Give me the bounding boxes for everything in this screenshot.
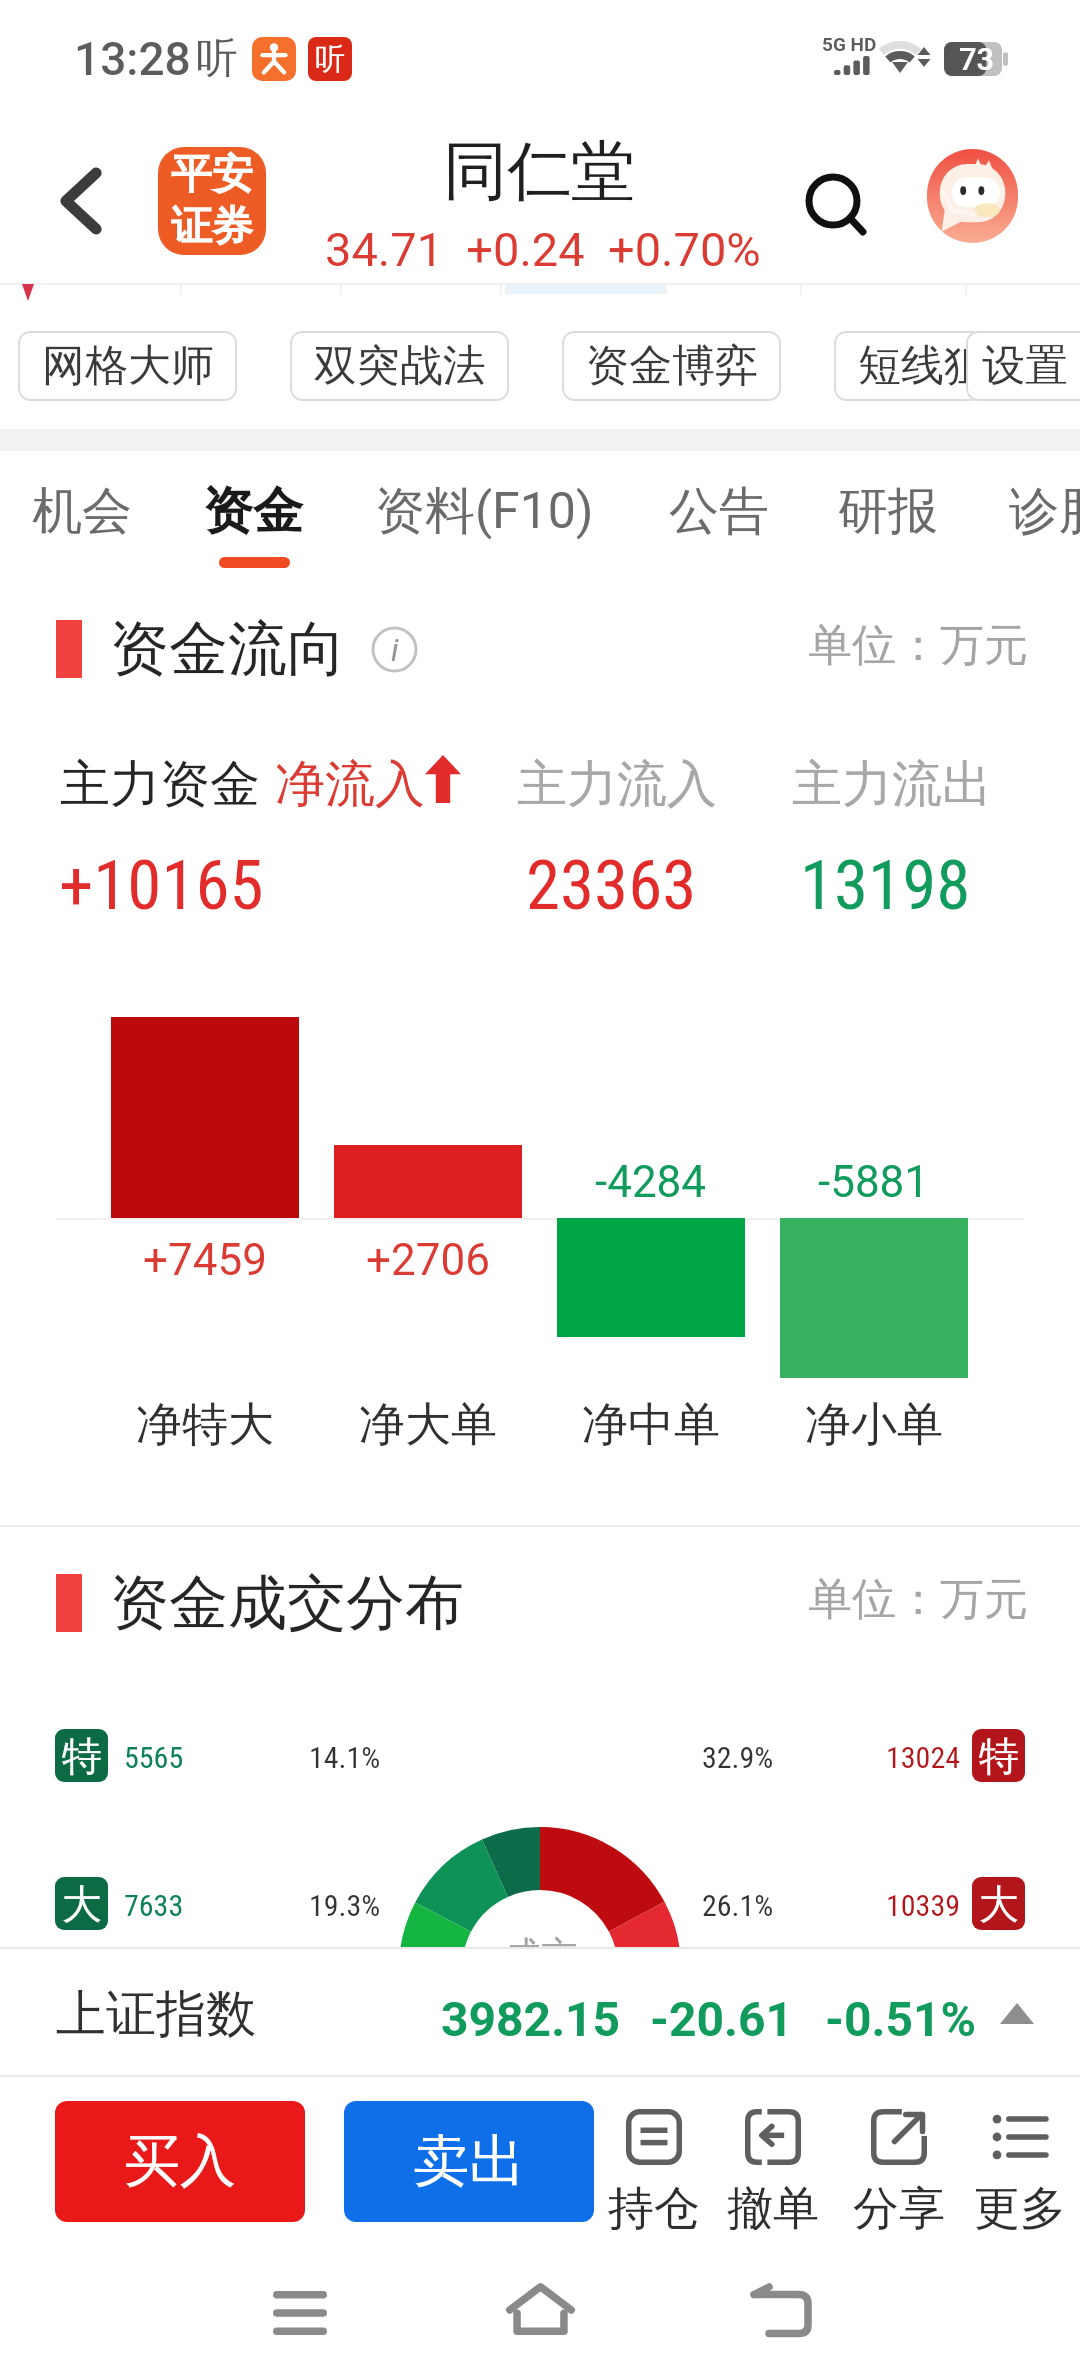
staticText: 买入	[124, 2126, 236, 2197]
staticText: -0.51%	[825, 1991, 976, 2047]
button[interactable]: 公告	[651, 455, 787, 580]
staticText: 7633	[124, 1888, 184, 1923]
button[interactable]: 上证指数	[0, 1947, 1080, 2077]
staticText: 资金	[203, 480, 303, 543]
staticText: 大	[62, 1879, 102, 1929]
staticText: 13198	[800, 845, 971, 926]
button[interactable]: Recents	[240, 2250, 360, 2376]
button[interactable]: Home	[480, 2250, 600, 2376]
staticText: 诊股	[1009, 480, 1080, 543]
staticText: i	[391, 631, 399, 669]
staticText: 单位：万元	[808, 618, 1028, 673]
button[interactable]: 研报	[820, 455, 956, 580]
button[interactable]: 卖出	[344, 2101, 594, 2222]
staticText: 单位：万元	[808, 1572, 1028, 1627]
staticText: 双突战法	[314, 339, 486, 393]
staticText: 净中单	[582, 1396, 720, 1454]
button[interactable]: 诊股	[991, 455, 1080, 580]
staticText: 32.9%	[702, 1740, 774, 1775]
staticText: 同仁堂	[443, 131, 635, 212]
staticText: +2706	[366, 1234, 490, 1286]
button[interactable]: Customer service	[927, 149, 1018, 243]
staticText: 特	[979, 1731, 1019, 1781]
button[interactable]: 分享	[839, 2098, 959, 2230]
staticText: 净大单	[359, 1396, 497, 1454]
staticText: 主力资金	[60, 753, 260, 816]
button[interactable]: Back	[720, 2250, 840, 2376]
staticText: 研报	[838, 480, 938, 543]
staticText: 更多	[974, 2180, 1066, 2230]
button[interactable]: 短线狙击	[834, 331, 1053, 401]
staticText: 持仓	[608, 2180, 700, 2230]
staticText: 证券	[171, 201, 253, 253]
button[interactable]: 资金博弈	[562, 331, 781, 401]
staticText: 平安	[171, 149, 253, 201]
staticText: 特	[62, 1731, 102, 1781]
staticText: -20.61	[650, 1991, 793, 2047]
staticText: 5G HD	[822, 33, 877, 55]
staticText: 34.71 +0.24 +0.70%	[325, 222, 761, 277]
staticText: 14.1%	[309, 1740, 381, 1775]
button[interactable]: Back	[41, 161, 121, 241]
staticText: 听	[196, 32, 238, 85]
staticText: 3982.15	[441, 1991, 621, 2047]
staticText: 资金流向	[110, 612, 346, 686]
button[interactable]: 资金	[185, 455, 321, 580]
button[interactable]: 买入	[55, 2101, 305, 2222]
button[interactable]: 更多	[960, 2098, 1080, 2230]
button[interactable]: Search	[788, 156, 880, 248]
staticText: 分享	[853, 2180, 945, 2230]
staticText: 短线狙击	[858, 339, 1030, 393]
button[interactable]: 撤单	[713, 2098, 833, 2230]
staticText: 资金成交分布	[110, 1566, 464, 1640]
staticText: 净特大	[136, 1396, 274, 1454]
staticText: 10339	[886, 1888, 961, 1923]
staticText: 上证指数	[56, 1983, 256, 2046]
button[interactable]: Info	[371, 626, 418, 673]
staticText: 主力流入	[517, 753, 717, 816]
staticText: 19.3%	[309, 1888, 381, 1923]
staticText: 公告	[669, 480, 769, 543]
staticText: 撤单	[727, 2180, 819, 2230]
staticText: 13024	[886, 1740, 961, 1775]
staticText: 机会	[32, 480, 132, 543]
button[interactable]: 设置	[966, 331, 1080, 401]
button[interactable]: 双突战法	[290, 331, 509, 401]
staticText: 资金博弈	[586, 339, 758, 393]
button[interactable]: 持仓	[594, 2098, 714, 2230]
staticText: -4284	[595, 1156, 707, 1208]
staticText: -5881	[818, 1156, 930, 1208]
staticText: 13:28	[74, 32, 191, 86]
staticText: +7459	[143, 1234, 267, 1286]
staticText: 23363	[526, 845, 697, 926]
staticText: +10165	[59, 845, 264, 926]
staticText: 资料(F10)	[375, 480, 594, 543]
staticText: 卖出	[413, 2126, 525, 2197]
staticText: 26.1%	[702, 1888, 774, 1923]
staticText: 听	[315, 40, 345, 78]
button[interactable]: Ping An Securities	[158, 147, 266, 255]
staticText: 73	[959, 41, 995, 75]
staticText: 净流入	[275, 753, 425, 816]
staticText: 设置	[982, 339, 1068, 393]
staticText: 大	[979, 1879, 1019, 1929]
staticText: 5565	[124, 1740, 184, 1775]
button[interactable]: 网格大师	[18, 331, 237, 401]
button[interactable]: 资料(F10)	[357, 455, 612, 580]
button[interactable]: 机会	[14, 455, 150, 580]
staticText: 成交	[504, 1932, 578, 1947]
staticText: 网格大师	[42, 339, 214, 393]
staticText: 主力流出	[792, 753, 992, 816]
staticText: 净小单	[805, 1396, 943, 1454]
